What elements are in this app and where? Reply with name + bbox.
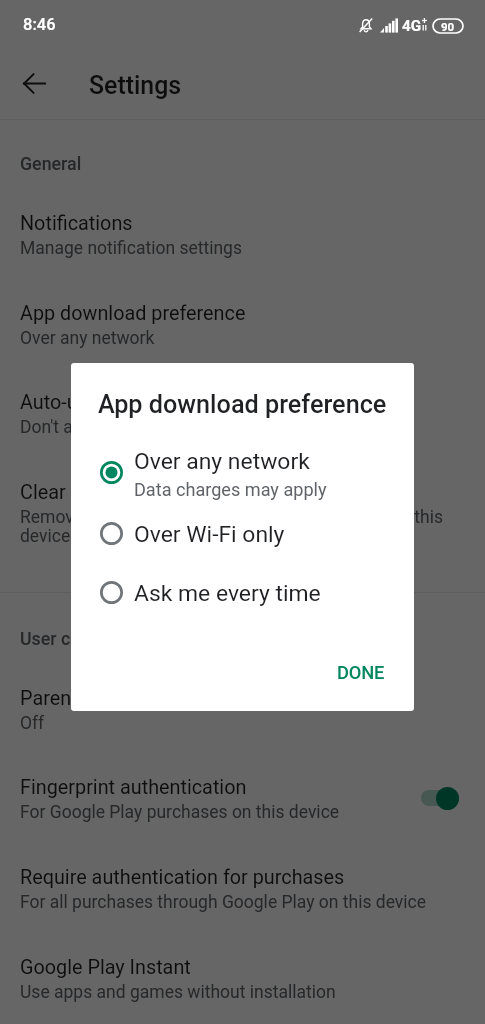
button[interactable]: DONE [322, 653, 400, 692]
button[interactable]: Ask me every time [71, 569, 414, 615]
staticText: 8:46 [23, 15, 56, 34]
staticText: Manage notification settings [20, 238, 242, 259]
staticText: App download preference [20, 302, 246, 325]
staticText: User controls [20, 628, 127, 649]
staticText: Over any network [20, 328, 155, 349]
staticText: Settings [89, 71, 182, 100]
staticText: Parental controls [20, 687, 170, 710]
button[interactable]: Google Play Instant [0, 942, 485, 1014]
staticText: Don't auto-update apps [20, 417, 200, 438]
staticText: Notifications [20, 212, 133, 235]
button[interactable]: Back [18, 67, 50, 99]
staticText: App download preference [98, 390, 387, 420]
staticText: Fingerprint authentication [20, 776, 247, 799]
staticText: Require authentication for purchases [20, 866, 345, 889]
staticText: General [20, 153, 82, 174]
staticText: Ask me every time [134, 580, 321, 607]
staticText: Clear local search history [20, 481, 242, 504]
button[interactable]: Auto-update apps [0, 377, 485, 449]
staticText: Off [20, 713, 45, 734]
button[interactable]: App download preference [0, 288, 485, 360]
staticText: For all purchases through Google Play on… [20, 892, 426, 913]
staticText: Google Play Instant [20, 956, 191, 979]
staticText: 90 [441, 20, 455, 33]
button[interactable]: Notifications [0, 198, 485, 270]
staticText: Use apps and games without installation [20, 982, 336, 1003]
button[interactable]: Over Wi-Fi only [71, 510, 414, 556]
button[interactable]: Clear local search history [0, 467, 485, 539]
staticText: 4G [402, 17, 422, 35]
button[interactable]: Parental controls [0, 673, 485, 745]
button[interactable]: Fingerprint authentication [0, 762, 485, 834]
staticText: Over Wi-Fi only [134, 521, 285, 548]
staticText: Data charges may apply [134, 479, 327, 500]
button[interactable]: Over any network [71, 449, 414, 495]
staticText: Auto-update apps [20, 391, 176, 414]
staticText: Over any network [134, 448, 310, 475]
button[interactable]: Require authentication for purchases [0, 852, 485, 924]
button[interactable]: Fingerprint authentication toggle [415, 780, 465, 816]
staticText: For Google Play purchases on this device [20, 802, 340, 823]
staticText: DONE [337, 662, 385, 683]
staticText: Remove all the searches you have perform… [20, 507, 485, 546]
